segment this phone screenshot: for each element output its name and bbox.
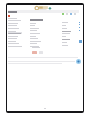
other: Verified badge	[76, 59, 81, 64]
other: Logo	[34, 5, 53, 11]
button[interactable]	[32, 51, 37, 54]
